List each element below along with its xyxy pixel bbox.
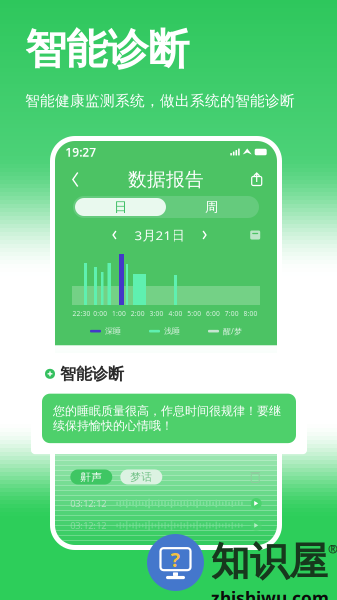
button[interactable]: Back (62, 166, 88, 192)
button[interactable]: Share (244, 166, 270, 192)
staticText: ® (328, 541, 337, 557)
staticText: 智能诊断 (25, 24, 189, 75)
staticText: 知识屋 (211, 538, 328, 585)
staticText: 日 (114, 199, 127, 215)
button[interactable]: 周 (166, 198, 257, 216)
staticText: 周 (205, 199, 218, 215)
button[interactable]: 日 (75, 198, 166, 216)
staticText: 0:00 (93, 309, 107, 318)
button[interactable]: Calendar (249, 228, 262, 241)
staticText: 深睡 (105, 326, 121, 336)
staticText: 8:00 (244, 309, 258, 318)
staticText: 6:00 (206, 309, 220, 318)
button[interactable]: Previous day (106, 227, 122, 243)
staticText: 7:00 (225, 309, 239, 318)
button[interactable]: 鼾声 (70, 469, 112, 484)
button[interactable]: 03:12:12 (52, 518, 280, 532)
staticText: 03:12:12 (70, 519, 106, 532)
staticText: 22:30 (72, 309, 90, 318)
staticText: 3:00 (150, 309, 164, 318)
staticText: 5:00 (187, 309, 201, 318)
staticText: 智能诊断 (60, 364, 124, 384)
button[interactable]: 梦话 (120, 469, 162, 484)
staticText: 鼾声 (80, 470, 102, 483)
staticText: 4:00 (168, 309, 182, 318)
staticText: 醒/梦 (223, 326, 242, 336)
staticText: 03:12:12 (70, 497, 106, 510)
staticText: 智能健康监测系统，做出系统的智能诊断 (25, 92, 295, 110)
button[interactable]: 03:12:12 (52, 496, 280, 510)
staticText: 数据报告 (128, 168, 204, 191)
staticText: zhishiwu.com (211, 586, 329, 600)
staticText: 2:00 (131, 309, 145, 318)
staticText: 您的睡眠质量很高，作息时间很规律！要继续保持愉快的心情哦！ (53, 404, 281, 433)
staticText: 19:27 (65, 144, 96, 160)
staticText: ? (170, 546, 180, 572)
button[interactable]: Next day (196, 227, 212, 243)
staticText: 浅睡 (164, 326, 180, 336)
staticText: 3月21日 (134, 226, 184, 244)
staticText: 1:00 (112, 309, 126, 318)
staticText: 梦话 (130, 470, 152, 483)
button[interactable]: Delete (249, 470, 262, 483)
